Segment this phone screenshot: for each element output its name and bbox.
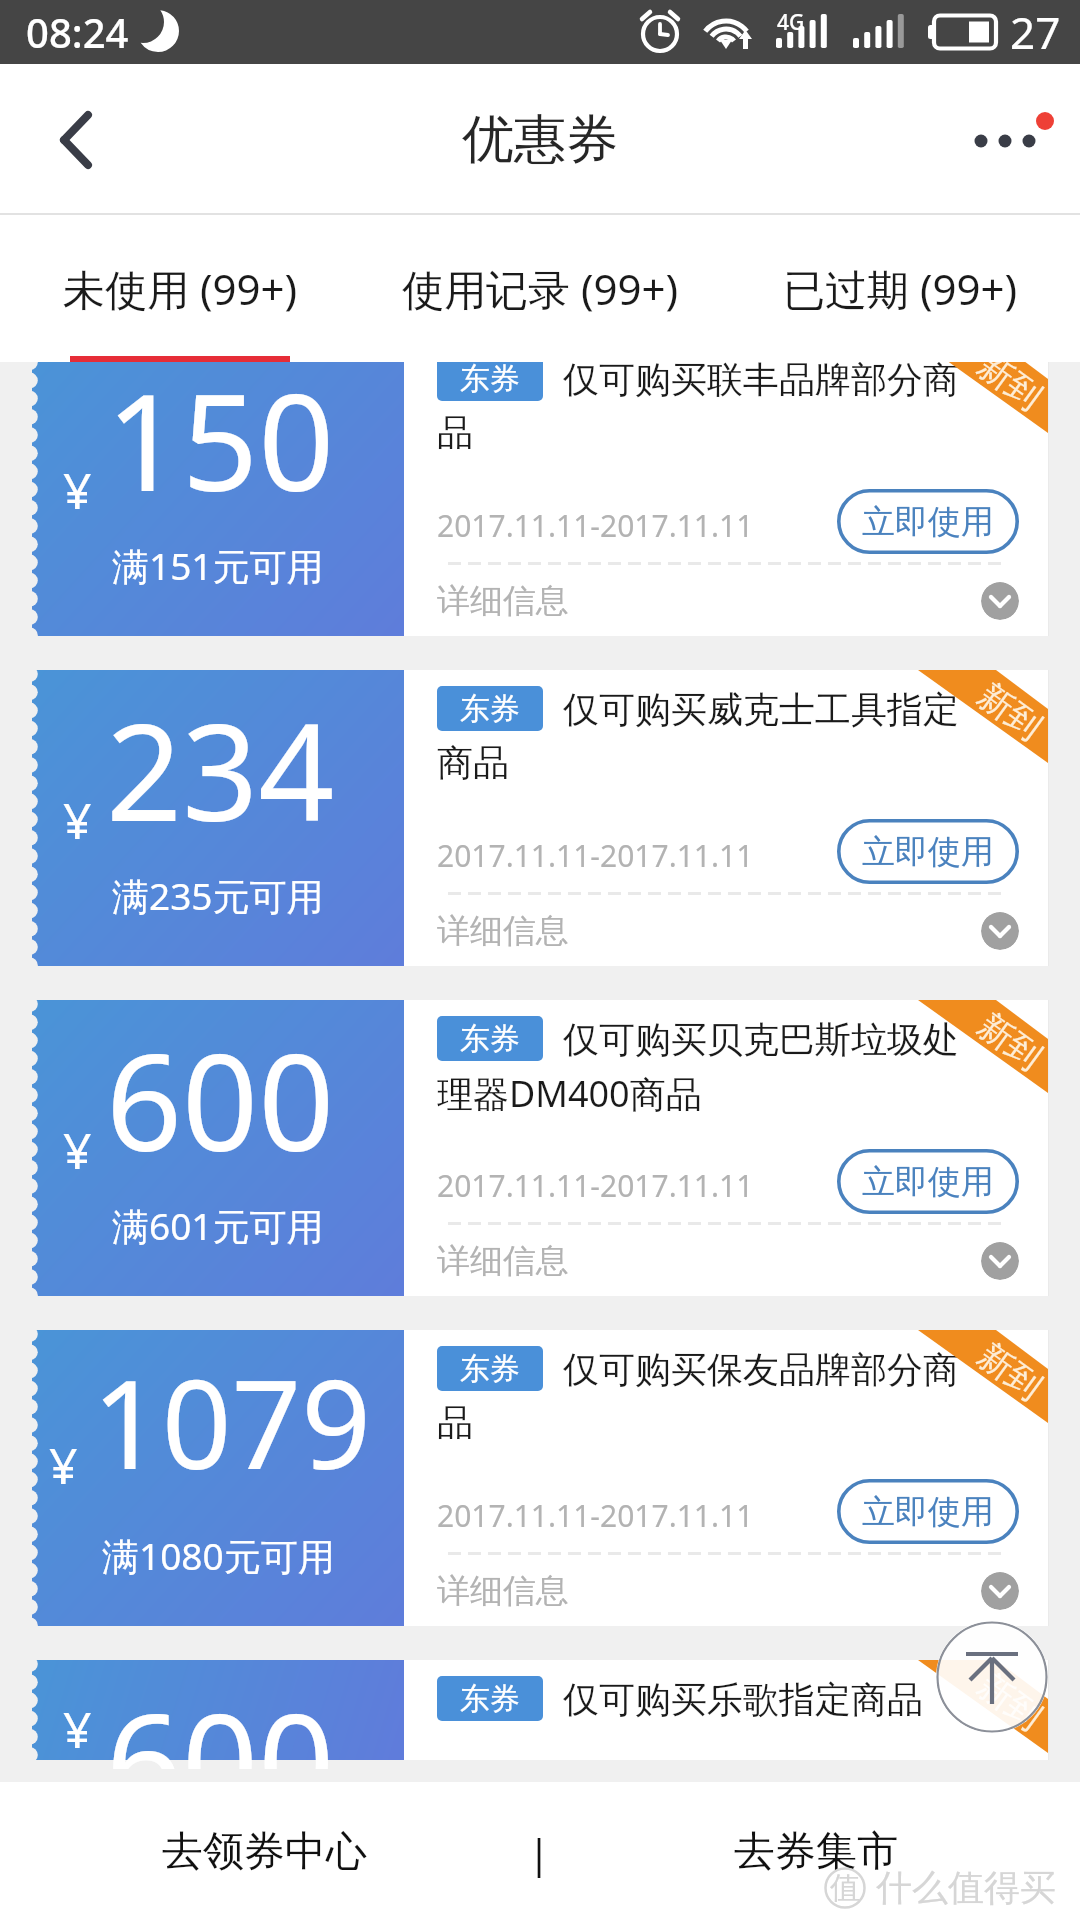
staticText: 08:24 xyxy=(26,5,129,59)
staticText: 东券 xyxy=(460,690,520,728)
staticText: 立即使用 xyxy=(862,501,994,543)
staticText: 新到 xyxy=(970,1004,1048,1079)
button[interactable]: 去券集市 xyxy=(551,1807,1080,1897)
staticText: 满601元可用 xyxy=(112,1200,324,1251)
staticText: []仅可购买贝克巴斯垃圾处理器DM400商品 xyxy=(437,1016,972,1118)
button[interactable]: 详细信息 xyxy=(437,1555,1019,1626)
staticText: ¥ xyxy=(63,1695,92,1763)
staticText: 234 xyxy=(106,679,335,860)
staticText: 2017.11.11-2017.11.11 xyxy=(437,1495,754,1536)
staticText: 未使用 (99+) xyxy=(63,260,298,317)
button[interactable]: Expand details xyxy=(981,912,1019,950)
staticText: ¥ xyxy=(49,1431,78,1499)
button[interactable]: More options xyxy=(950,75,1080,205)
button[interactable]: 详细信息 xyxy=(437,565,1019,636)
staticText: 新到 xyxy=(970,1664,1048,1739)
staticText: 新到 xyxy=(970,1334,1048,1409)
staticText: 详细信息 xyxy=(437,1240,569,1282)
button[interactable]: ¥ xyxy=(32,670,1048,966)
staticText: 东券 xyxy=(460,362,520,398)
staticText: []仅可购买威克士工具指定商品 xyxy=(437,686,972,786)
button[interactable]: Scroll to top xyxy=(936,1621,1048,1733)
button[interactable]: ¥ xyxy=(32,362,1048,636)
button[interactable]: 立即使用 xyxy=(837,819,1019,884)
staticText: 满1080元可用 xyxy=(102,1530,335,1581)
staticText: ¥ xyxy=(63,786,92,854)
staticText: 已过期 (99+) xyxy=(783,260,1018,317)
staticText: 满235元可用 xyxy=(112,870,324,921)
button[interactable]: ¥ xyxy=(32,1660,1048,1760)
staticText: 什么值得买 xyxy=(876,1865,1056,1910)
staticText: 600 xyxy=(106,1669,335,1769)
staticText: 去券集市 xyxy=(734,1826,898,1878)
staticText: 2017.11.11-2017.11.11 xyxy=(437,835,754,876)
staticText: ¥ xyxy=(63,456,92,524)
staticText: 600 xyxy=(106,1009,335,1190)
staticText: 满151元可用 xyxy=(112,540,324,591)
staticText: 东券 xyxy=(460,1350,520,1388)
button[interactable]: 详细信息 xyxy=(437,1225,1019,1296)
button[interactable]: 立即使用 xyxy=(837,1149,1019,1214)
staticText: []仅可购买乐歌指定商品 xyxy=(437,1676,972,1723)
staticText: 详细信息 xyxy=(437,910,569,952)
staticText: 2017.11.11-2017.11.11 xyxy=(437,1165,754,1206)
staticText: 优惠券 xyxy=(462,107,618,173)
staticText: []仅可购买联丰品牌部分商品 xyxy=(437,362,972,456)
staticText: 1079 xyxy=(92,1339,372,1505)
staticText: 使用记录 (99+) xyxy=(402,260,679,317)
button[interactable]: 已过期 (99+) xyxy=(720,215,1080,362)
button[interactable]: ¥ xyxy=(32,1000,1048,1296)
button[interactable]: 去领券中心 xyxy=(0,1807,528,1897)
staticText: 立即使用 xyxy=(862,831,994,873)
staticText: 4G xyxy=(777,8,805,37)
staticText: 新到 xyxy=(970,362,1048,419)
button[interactable]: 使用记录 (99+) xyxy=(360,215,720,362)
button[interactable]: 未使用 (99+) xyxy=(0,215,360,362)
button[interactable]: 立即使用 xyxy=(837,489,1019,554)
staticText: []仅可购买保友品牌部分商品 xyxy=(437,1346,972,1446)
staticText: 去领券中心 xyxy=(162,1826,367,1878)
staticText: 27 xyxy=(1010,2,1061,62)
staticText: 东券 xyxy=(460,1020,520,1058)
staticText: 新到 xyxy=(970,674,1048,749)
button[interactable]: ¥ xyxy=(32,1330,1048,1626)
staticText: 值 xyxy=(830,1869,860,1907)
staticText: 详细信息 xyxy=(437,1570,569,1612)
staticText: 立即使用 xyxy=(862,1491,994,1533)
button[interactable]: 详细信息 xyxy=(437,895,1019,966)
button[interactable]: 立即使用 xyxy=(837,1479,1019,1544)
staticText: ¥ xyxy=(63,1116,92,1184)
button[interactable]: Expand details xyxy=(981,1242,1019,1280)
staticText: 详细信息 xyxy=(437,580,569,622)
staticText: 2017.11.11-2017.11.11 xyxy=(437,505,754,546)
staticText: 立即使用 xyxy=(862,1161,994,1203)
staticText: | xyxy=(528,1825,551,1879)
button[interactable]: Expand details xyxy=(981,582,1019,620)
button[interactable]: Back xyxy=(0,80,120,200)
staticText: 150 xyxy=(106,362,335,530)
staticText: 东券 xyxy=(460,1680,520,1718)
button[interactable]: Expand details xyxy=(981,1572,1019,1610)
